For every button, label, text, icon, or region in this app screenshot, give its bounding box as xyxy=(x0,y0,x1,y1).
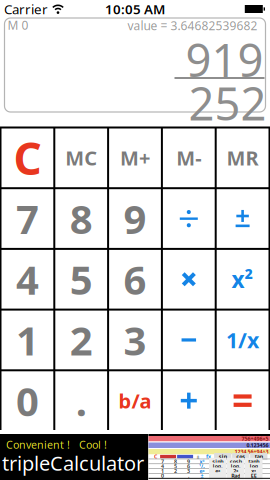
button[interactable]: Plus minus xyxy=(217,189,268,248)
button[interactable]: MR xyxy=(217,128,268,187)
button[interactable]: 8 xyxy=(55,189,107,248)
staticText: 1 xyxy=(161,467,164,474)
staticText: M 0 xyxy=(7,17,28,33)
staticText: Convenient ! Cool ! xyxy=(6,437,107,452)
staticText: 2 xyxy=(70,313,93,366)
button[interactable]: 2 xyxy=(55,311,107,369)
staticText: eˣ xyxy=(215,467,220,474)
staticText: 8 xyxy=(70,192,93,245)
staticText: 9 xyxy=(187,458,190,465)
staticText: 5 xyxy=(70,253,93,306)
staticText: b/a xyxy=(118,387,151,414)
staticText: 2ˣ xyxy=(233,467,238,474)
staticText: 0.123456 xyxy=(246,442,268,449)
staticText: M- xyxy=(176,145,201,171)
button[interactable]: Divide xyxy=(163,189,215,248)
staticText: EE xyxy=(251,472,257,479)
staticText: 1 xyxy=(16,313,39,366)
button[interactable]: MC xyxy=(55,128,107,187)
staticText: MR xyxy=(227,145,259,171)
staticText: tanh xyxy=(248,458,259,465)
staticText: 7 xyxy=(16,192,39,245)
button[interactable]: Minus xyxy=(163,311,215,369)
staticText: 1234.56+94^3 xyxy=(234,448,268,455)
staticText: 1/x xyxy=(226,326,259,354)
staticText: 3 xyxy=(123,313,146,366)
staticText: Rad xyxy=(231,472,240,479)
staticText: cos xyxy=(236,453,245,460)
staticText: 756+496×5 xyxy=(241,435,268,442)
staticText: . xyxy=(76,374,87,427)
staticText: 5 xyxy=(174,463,177,470)
staticText: ± xyxy=(197,453,200,460)
button[interactable]: Equals xyxy=(217,371,268,430)
staticText: 3 xyxy=(187,467,190,474)
staticText: xʸ xyxy=(251,467,256,474)
button[interactable]: Multiply xyxy=(163,250,215,309)
staticText: 252 xyxy=(188,73,266,133)
staticText: C xyxy=(154,453,157,460)
staticText: 7 xyxy=(161,458,164,465)
staticText: Carrier xyxy=(4,0,48,18)
staticText: x² xyxy=(199,458,204,465)
staticText: M+ xyxy=(120,145,150,171)
staticText: tripleCalculator xyxy=(2,450,144,476)
staticText: C xyxy=(13,129,41,187)
button[interactable]: . xyxy=(55,371,107,430)
button[interactable]: Plus xyxy=(163,371,215,430)
staticText: 10:05 AM xyxy=(105,0,165,18)
button[interactable]: 9 xyxy=(109,189,161,248)
staticText: 4 xyxy=(161,463,164,470)
staticText: 6 xyxy=(123,253,146,306)
staticText: 9 xyxy=(123,192,146,245)
button[interactable]: 1/x xyxy=(217,311,268,369)
button[interactable]: b/a xyxy=(109,371,161,430)
button[interactable]: tripleCalculator advertisement xyxy=(0,434,270,480)
staticText: 0 xyxy=(16,374,39,427)
button[interactable]: 0 xyxy=(1,371,53,430)
staticText: log₁ xyxy=(231,463,241,470)
staticText: MC xyxy=(65,145,97,171)
button[interactable]: 1 xyxy=(1,311,53,369)
button[interactable]: C xyxy=(1,128,53,187)
button[interactable]: 5 xyxy=(55,250,107,309)
staticText: 8 xyxy=(174,458,177,465)
staticText: 4 xyxy=(16,253,39,306)
staticText: fx xyxy=(206,453,211,460)
staticText: value = 3.64682539682 xyxy=(127,17,257,33)
staticText: . xyxy=(188,472,189,479)
staticText: 2 xyxy=(174,467,177,474)
staticText: sinh xyxy=(212,458,223,465)
staticText: sin xyxy=(219,453,227,460)
staticText: ¹/ₓ xyxy=(199,463,205,470)
button[interactable]: 4 xyxy=(1,250,53,309)
staticText: 919 xyxy=(185,29,263,90)
staticText: ± xyxy=(200,472,203,479)
staticText: x² xyxy=(232,264,254,294)
staticText: 6 xyxy=(187,463,190,470)
button[interactable]: M- xyxy=(163,128,215,187)
button[interactable]: 6 xyxy=(109,250,161,309)
staticText: eˣ xyxy=(199,467,204,474)
staticText: log₂ xyxy=(213,463,223,470)
button[interactable]: 7 xyxy=(1,189,53,248)
button[interactable]: M+ xyxy=(109,128,161,187)
button[interactable]: 3 xyxy=(109,311,161,369)
staticText: 0 xyxy=(161,472,164,479)
staticText: tan xyxy=(255,453,263,460)
staticText: log xyxy=(250,463,258,470)
button[interactable]: Square xyxy=(217,250,268,309)
staticText: cosh xyxy=(230,458,242,465)
